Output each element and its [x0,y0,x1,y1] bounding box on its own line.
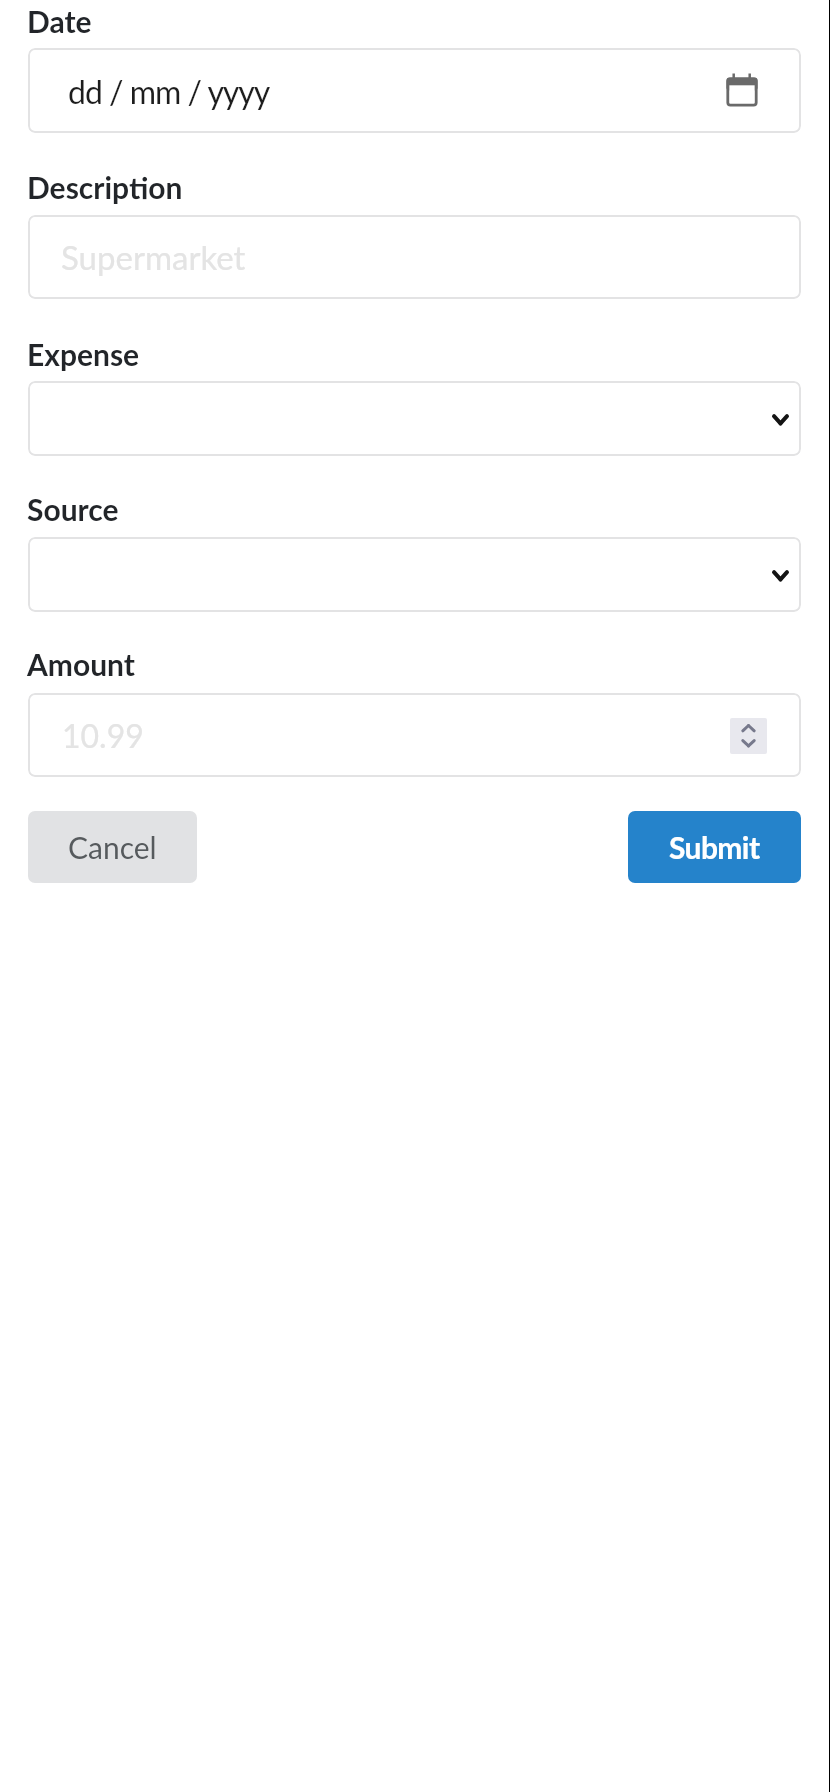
button[interactable]: Supermarket [28,215,801,299]
staticText: Date [27,3,92,39]
button[interactable]: 10.99 [28,693,801,777]
button[interactable]: Open dropdown [28,537,801,612]
button[interactable]: Cancel [28,811,197,883]
staticText: Submit [669,829,760,865]
button[interactable]: Open dropdown [772,414,793,428]
staticText: Source [27,491,119,527]
staticText: Cancel [68,829,157,865]
staticText: Description [27,169,183,205]
staticText: dd / mm / yyyy [68,72,270,110]
staticText: Amount [27,646,135,682]
button[interactable]: Open dropdown [28,381,801,456]
button[interactable]: Open dropdown [772,570,793,584]
button[interactable]: Open calendar picker [726,73,759,107]
staticText: 10.99 [62,716,144,754]
staticText: Expense [27,336,140,372]
button[interactable]: Submit [628,811,801,883]
staticText: Supermarket [61,237,246,277]
button[interactable]: dd / mm / yyyy [28,48,801,133]
button[interactable]: Increase or decrease amount [730,718,767,754]
